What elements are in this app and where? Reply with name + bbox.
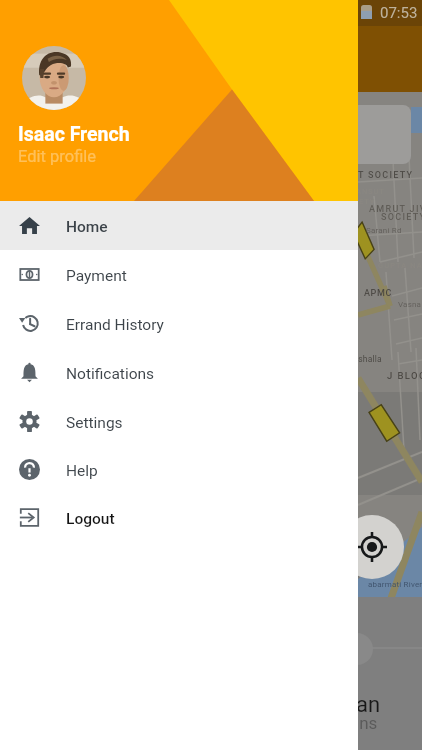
- staticText: Notifications: [66, 365, 155, 383]
- staticText: APMC: [364, 288, 392, 299]
- staticText: SOCIETY: [381, 212, 422, 223]
- staticText: Home: [66, 218, 108, 236]
- staticText: an: [356, 692, 381, 718]
- button[interactable]: Help: [0, 445, 358, 494]
- staticText: Sarani Rd: [366, 226, 402, 235]
- staticText: ins: [355, 713, 378, 733]
- staticText: Errand History: [66, 316, 164, 334]
- button[interactable]: Logout: [0, 493, 358, 542]
- staticText: J BLOCK: [387, 370, 422, 381]
- button[interactable]: My location: [340, 515, 404, 579]
- staticText: 07:53: [380, 4, 418, 22]
- button[interactable]: Payment: [0, 250, 358, 299]
- staticText: Help: [66, 462, 98, 480]
- staticText: AMRUT JIVA: [369, 204, 422, 215]
- button[interactable]: Errand History: [0, 299, 358, 348]
- staticText: Isaac French: [18, 123, 130, 146]
- staticText: ANSUT: [356, 187, 385, 196]
- staticText: T SOCIETY: [358, 170, 414, 181]
- button[interactable]: Home: [0, 201, 358, 250]
- staticText: abarmati River: [368, 580, 422, 589]
- button[interactable]: Settings: [0, 397, 358, 446]
- staticText: Vasna Rd: [398, 300, 422, 309]
- button[interactable]: Notifications: [0, 348, 358, 397]
- staticText: Edit profile: [18, 147, 97, 166]
- staticText: Settings: [66, 414, 123, 432]
- staticText: IETY: [356, 197, 376, 206]
- staticText: ishalla: [356, 354, 382, 364]
- staticText: Payment: [66, 267, 127, 285]
- staticText: Logout: [66, 510, 115, 528]
